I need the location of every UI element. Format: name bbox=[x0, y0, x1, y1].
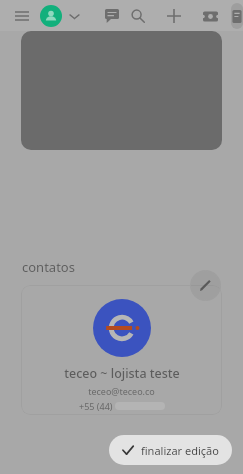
button[interactable]: Account bbox=[40, 5, 62, 27]
staticText: contatos bbox=[22, 258, 75, 276]
staticText: teceo@teceo.co bbox=[88, 385, 155, 397]
button[interactable]: Cover photo bbox=[21, 31, 222, 150]
button[interactable]: Menu bbox=[8, 2, 36, 30]
button[interactable]: Edit contact bbox=[190, 270, 221, 301]
button[interactable]: Add bbox=[161, 3, 187, 29]
button[interactable]: teceo ~ lojista teste bbox=[21, 285, 222, 415]
staticText: finalizar edição bbox=[141, 443, 219, 458]
button[interactable]: Messages bbox=[99, 3, 125, 29]
button[interactable]: Offers bbox=[197, 3, 223, 29]
button[interactable]: Switch account bbox=[65, 7, 83, 25]
button[interactable]: Search bbox=[125, 3, 151, 29]
staticText: teceo ~ lojista teste bbox=[64, 365, 180, 382]
staticText: +55 (44) bbox=[79, 400, 113, 412]
button[interactable]: finalizar edição bbox=[109, 435, 232, 465]
button[interactable]: Documents bbox=[231, 3, 243, 29]
